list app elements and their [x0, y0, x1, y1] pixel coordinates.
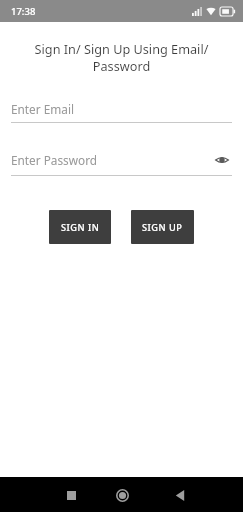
staticText: Enter Password — [11, 152, 212, 168]
staticText: 17:38 — [11, 5, 36, 18]
button[interactable]: SIGN UP — [131, 210, 194, 244]
button[interactable]: SIGN IN — [49, 210, 111, 244]
button[interactable]: Back — [169, 484, 191, 506]
button[interactable]: Enter Email — [11, 101, 232, 123]
button[interactable]: Enter Password — [11, 150, 232, 176]
staticText: SIGN IN — [61, 221, 100, 234]
button[interactable]: Show password — [212, 150, 232, 170]
staticText: Enter Email — [11, 101, 232, 117]
staticText: Sign In/ Sign Up Using Email/Password — [6, 40, 237, 74]
button[interactable]: Home — [110, 483, 134, 507]
staticText: SIGN UP — [142, 221, 183, 234]
button[interactable]: Recent apps — [60, 484, 82, 506]
